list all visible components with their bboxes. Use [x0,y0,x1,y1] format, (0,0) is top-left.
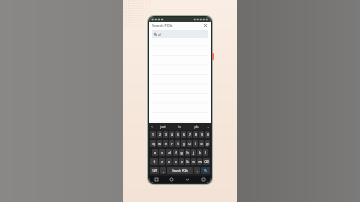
button[interactable]: Search POIs [167,167,193,174]
button[interactable]: w [157,140,162,147]
button[interactable]: 4 [169,131,174,138]
button[interactable]: Home [164,176,179,183]
button[interactable]: x [166,158,172,165]
staticText: 0 [207,132,209,137]
staticText: l [205,150,206,155]
staticText: 8 [195,132,197,137]
staticText: is [178,125,181,129]
staticText: h [186,150,189,155]
staticText: . [197,168,198,173]
button[interactable]: f [173,149,178,156]
staticText: 1 [152,132,154,137]
button[interactable]: More [205,123,211,130]
staticText: g [180,150,183,155]
button[interactable]: n [191,158,196,165]
button[interactable]: e [163,140,168,147]
button[interactable]: Backspace [203,158,210,165]
button[interactable]: 8 [193,131,198,138]
staticText: r [171,141,173,146]
staticText: x [168,159,170,164]
button[interactable]: Back [179,176,195,183]
staticText: m [198,159,202,164]
button[interactable]: is [171,123,188,130]
staticText: s [161,150,163,155]
button[interactable]: r [169,140,174,147]
button[interactable]: y [181,140,186,147]
staticText: ⌫ [204,160,209,164]
staticText: p [206,141,209,146]
button[interactable]: z [159,158,165,165]
button[interactable]: g [179,149,184,156]
button[interactable]: , [160,167,166,174]
staticText: w [158,141,161,146]
button[interactable]: Keyboard [195,176,211,183]
button[interactable]: Recents [149,176,164,183]
button[interactable]: just [155,123,171,130]
staticText: 4 [171,132,173,137]
button[interactable]: s [159,149,165,156]
button[interactable]: 9 [199,131,204,138]
button[interactable]: a [152,149,158,156]
button[interactable]: v [179,158,184,165]
button[interactable]: Symbols [150,167,159,174]
staticText: 9 [201,132,203,137]
button[interactable]: m [197,158,202,165]
staticText: v [181,159,183,164]
staticText: a [154,150,156,155]
button[interactable]: al [152,30,208,38]
button[interactable]: u [187,140,192,147]
staticText: 7 [189,132,191,137]
button[interactable]: pls [188,123,205,130]
button[interactable]: h [185,149,190,156]
button[interactable]: 1 [150,131,156,138]
staticText: t [177,141,179,146]
staticText: i [195,141,196,146]
staticText: y [183,141,185,146]
staticText: k [199,150,201,155]
staticText: , [163,168,164,173]
staticText: pls [194,125,199,129]
staticText: b [186,159,189,164]
button[interactable]: k [197,149,202,156]
staticText: u [188,141,191,146]
staticText: < [151,125,153,129]
button[interactable]: c [173,158,178,165]
staticText: just [160,125,166,129]
staticText: 6 [183,132,185,137]
button[interactable]: 5 [175,131,180,138]
staticText: 5 [177,132,179,137]
button[interactable]: Shift [150,158,158,165]
staticText: j [193,150,194,155]
staticText: e [165,141,167,146]
staticText: o [200,141,203,146]
staticText: !#1 [152,168,158,173]
staticText: 3 [165,132,167,137]
button[interactable]: 3 [163,131,168,138]
button[interactable]: 6 [181,131,186,138]
staticText: Search POIs [172,169,188,173]
button[interactable]: o [199,140,204,147]
button[interactable]: 0 [205,131,210,138]
button[interactable]: Search [201,167,210,174]
button[interactable]: p [205,140,210,147]
staticText: al [158,32,161,37]
button[interactable]: d [166,149,172,156]
button[interactable]: b [185,158,190,165]
staticText: 2 [159,132,161,137]
button[interactable]: i [193,140,198,147]
button[interactable]: j [191,149,196,156]
staticText: z [161,159,163,164]
staticText: f [175,150,177,155]
staticText: ⌄ [207,125,210,128]
button[interactable]: 2 [157,131,162,138]
button[interactable]: . [194,167,200,174]
button[interactable]: q [150,140,156,147]
staticText: q [152,141,155,146]
button[interactable]: Previous [149,123,155,130]
button[interactable]: Close [203,23,208,28]
button[interactable]: 7 [187,131,192,138]
staticText: n [192,159,195,164]
button[interactable]: l [203,149,208,156]
staticText: Search POIs [152,23,173,28]
button[interactable]: t [175,140,180,147]
